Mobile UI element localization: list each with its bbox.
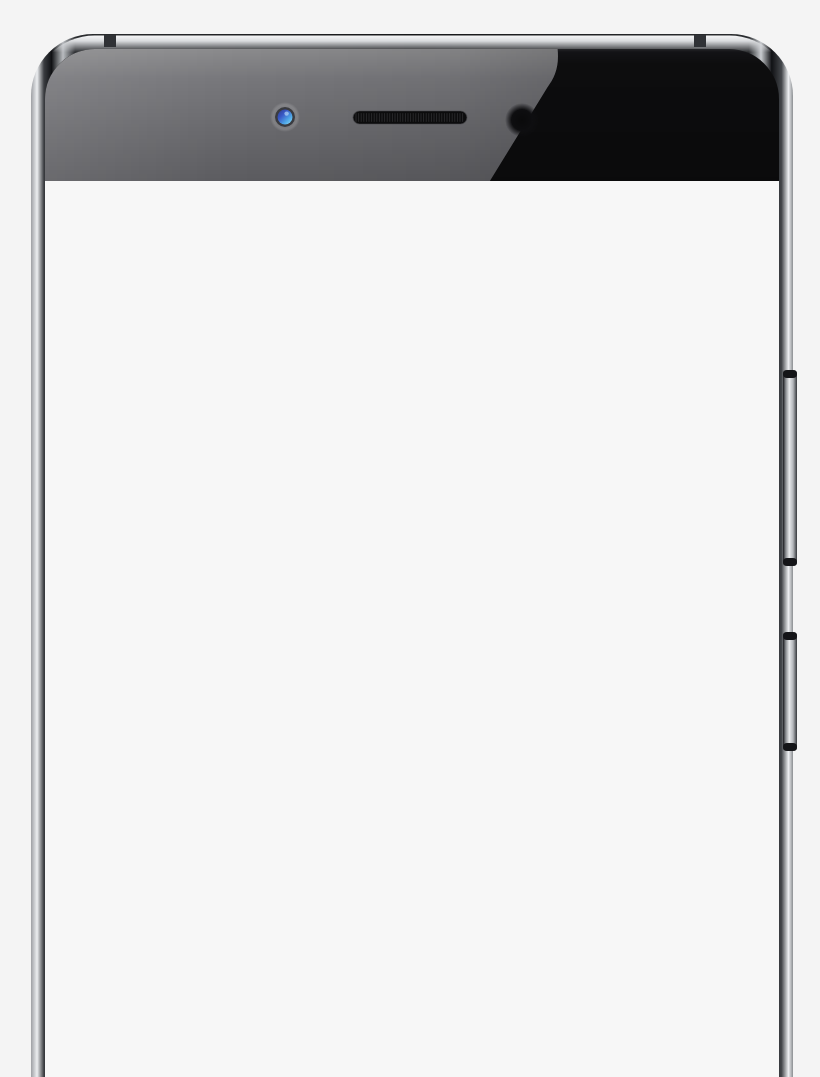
button[interactable]: Volume [780, 368, 800, 568]
button[interactable]: Power [780, 630, 800, 753]
